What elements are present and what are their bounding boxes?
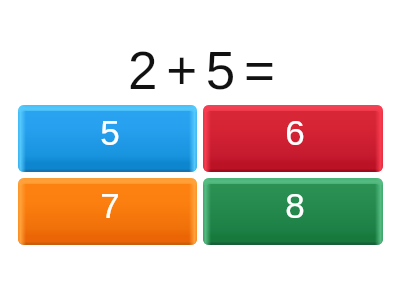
staticText: 6 xyxy=(285,113,305,152)
button[interactable]: 6 xyxy=(203,105,383,172)
staticText: 5 xyxy=(100,113,120,152)
button[interactable]: 8 xyxy=(203,178,383,245)
staticText: 8 xyxy=(285,186,305,225)
button[interactable]: 7 xyxy=(18,178,197,245)
staticText: 2 + 5 = xyxy=(0,41,400,100)
staticText: 7 xyxy=(100,186,120,225)
button[interactable]: 5 xyxy=(18,105,197,172)
